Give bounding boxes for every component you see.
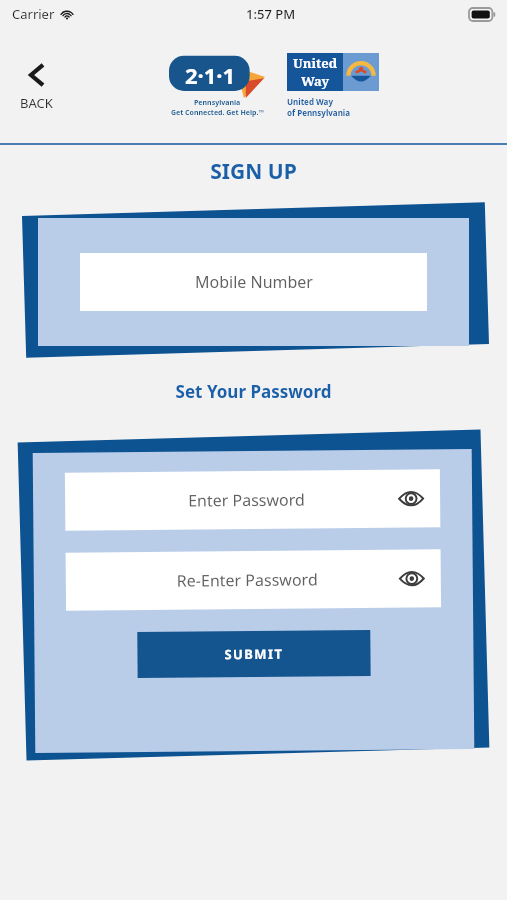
staticText: Get Connected. Get Help.™	[171, 108, 264, 118]
button[interactable]: Back	[14, 54, 59, 118]
staticText: of Pennsylvania	[287, 107, 351, 118]
staticText: SUBMIT	[224, 645, 284, 663]
staticText: Mobile Number	[195, 271, 313, 293]
button[interactable]: Show password	[395, 561, 429, 596]
staticText: Way	[301, 72, 330, 90]
staticText: Carrier	[12, 5, 55, 23]
staticText: Set Your Password	[0, 380, 507, 403]
staticText: United Way	[287, 96, 333, 107]
staticText: Pennsylvania	[194, 98, 241, 108]
staticText: SIGN UP	[0, 157, 507, 186]
staticText: BACK	[20, 94, 53, 112]
staticText: United	[293, 54, 338, 72]
staticText: Re-Enter Password	[177, 568, 318, 592]
staticText: Enter Password	[188, 488, 305, 511]
staticText: 1:57 PM	[246, 5, 296, 23]
staticText: 2·1·1	[185, 60, 236, 90]
button[interactable]: Mobile Number	[80, 253, 427, 311]
button[interactable]: Show password	[394, 481, 428, 516]
button[interactable]: SUBMIT	[137, 630, 371, 678]
button[interactable]: Re-Enter Password	[66, 549, 441, 611]
button[interactable]: Enter Password	[65, 469, 440, 531]
